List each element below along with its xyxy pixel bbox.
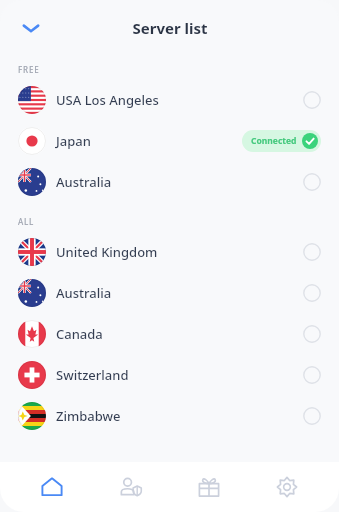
button[interactable]: Japan [0,120,339,161]
staticText: Australia [56,173,112,191]
staticText: FREE [18,64,40,75]
staticText: Switzerland [56,366,129,384]
button[interactable]: Switzerland [0,354,339,395]
staticText: ALL [18,216,35,227]
button[interactable]: Zimbabwe [0,395,339,436]
staticText: Zimbabwe [56,407,121,425]
staticText: Server list [132,18,208,38]
button[interactable]: Australia [0,272,339,313]
button[interactable]: Rewards [183,462,235,512]
staticText: Japan [56,132,91,150]
staticText: Canada [56,325,103,343]
staticText: Connected [251,135,297,147]
button[interactable]: Profile [104,462,156,512]
button[interactable]: USA Los Angeles [0,79,339,120]
staticText: United Kingdom [56,243,158,261]
button[interactable]: United Kingdom [0,231,339,272]
button[interactable]: Australia [0,161,339,202]
staticText: USA Los Angeles [56,91,159,109]
button[interactable]: Canada [0,313,339,354]
button[interactable]: Settings [261,462,313,512]
button[interactable]: Collapse [12,9,50,47]
button[interactable]: Home [26,462,78,512]
staticText: Australia [56,284,112,302]
